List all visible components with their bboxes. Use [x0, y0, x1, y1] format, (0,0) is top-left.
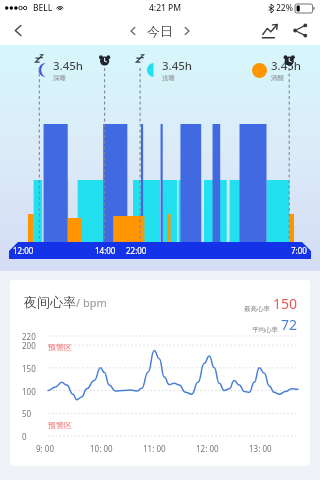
staticText: 9: 00 — [36, 443, 90, 454]
staticText: / bpm — [76, 295, 107, 310]
button[interactable]: Trends — [255, 16, 285, 45]
button[interactable]: Share — [285, 16, 315, 45]
staticText: 3.45h — [53, 58, 84, 74]
staticText: 150 — [273, 294, 298, 313]
staticText: 预警区 — [48, 420, 72, 430]
staticText: 清醒 — [271, 74, 284, 82]
button[interactable]: Next day — [176, 18, 198, 44]
staticText: 0 — [22, 431, 27, 442]
staticText: 3.45h — [162, 58, 193, 74]
staticText: 今日 — [147, 23, 173, 39]
staticText: BELL — [33, 2, 53, 14]
button[interactable]: 今日 — [144, 23, 176, 39]
staticText: 3.45h — [271, 58, 302, 74]
staticText: 浅睡 — [162, 74, 175, 82]
staticText: 100 — [22, 386, 36, 397]
staticText: 220 — [22, 331, 36, 342]
staticText: 200 — [22, 340, 36, 351]
staticText: 预警区 — [48, 342, 72, 352]
button[interactable]: 3.45h — [0, 45, 320, 271]
staticText: 150 — [22, 363, 36, 374]
staticText: 深睡 — [53, 74, 66, 82]
staticText: 平均心率 — [252, 326, 278, 334]
staticText: 22:00 — [126, 245, 147, 256]
button[interactable]: Previous day — [122, 18, 144, 44]
staticText: 50 — [22, 408, 32, 419]
staticText: 14:00 — [95, 245, 116, 256]
staticText: 11: 00 — [143, 443, 196, 454]
staticText: 10: 00 — [90, 443, 143, 454]
staticText: 13: 00 — [249, 443, 302, 454]
staticText: 4:21 PM — [149, 2, 182, 14]
staticText: 7:00 — [291, 245, 307, 256]
staticText: 72 — [281, 315, 298, 334]
button[interactable]: 夜间心率 — [10, 280, 310, 466]
staticText: 12: 00 — [196, 443, 249, 454]
button[interactable]: Back — [0, 16, 36, 45]
staticText: 最高心率 — [244, 305, 270, 313]
staticText: 22% — [276, 2, 293, 14]
staticText: 夜间心率 — [24, 294, 76, 310]
staticText: 12:00 — [13, 245, 34, 256]
